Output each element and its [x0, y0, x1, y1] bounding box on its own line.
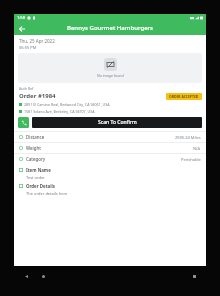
staticText: No image found: [97, 73, 124, 78]
button[interactable]: Category: [14, 154, 206, 164]
staticText: Thu, 25 Apr 2022: [19, 38, 55, 44]
staticText: Bennys Gourmet Hamburgers: [67, 24, 154, 32]
staticText: Test order: [26, 175, 45, 180]
staticText: 2595.24 Miles: [175, 135, 201, 140]
staticText: The order details here: [26, 191, 68, 196]
staticText: Distance: [26, 134, 45, 140]
button[interactable]: No image found: [18, 53, 202, 83]
button[interactable]: Back: [22, 272, 30, 280]
staticText: Order Details: [26, 183, 56, 189]
staticText: 1581 Solano Ave, Berkeley, CA 94707, USA: [24, 109, 95, 114]
staticText: Order #1984: [19, 92, 56, 100]
button[interactable]: ORDER ACCEPTED: [166, 93, 202, 100]
button[interactable]: Order Details: [14, 183, 206, 199]
staticText: 1:58: [17, 15, 25, 20]
staticText: Category: [26, 156, 46, 162]
staticText: 06:55 PM: [19, 45, 37, 50]
staticText: 2891 El Camino Real, Redwood City, CA 94…: [24, 102, 110, 107]
button[interactable]: Home: [39, 272, 47, 280]
button[interactable]: Scan To Confirm: [32, 117, 202, 128]
button[interactable]: Item Name: [14, 167, 206, 183]
button[interactable]: Call: [18, 117, 29, 128]
staticText: Perishable: [181, 157, 201, 162]
staticText: Weight: [26, 145, 41, 151]
button[interactable]: Recents: [190, 272, 198, 280]
staticText: Item Name: [26, 167, 51, 173]
button[interactable]: Weight: [14, 143, 206, 153]
button[interactable]: Back: [16, 23, 27, 34]
staticText: Scan To Confirm: [98, 119, 137, 126]
button[interactable]: Distance: [14, 132, 206, 142]
staticText: N/A: [193, 146, 201, 151]
staticText: Auth Ref: [19, 86, 34, 91]
staticText: ORDER ACCEPTED: [169, 94, 199, 99]
